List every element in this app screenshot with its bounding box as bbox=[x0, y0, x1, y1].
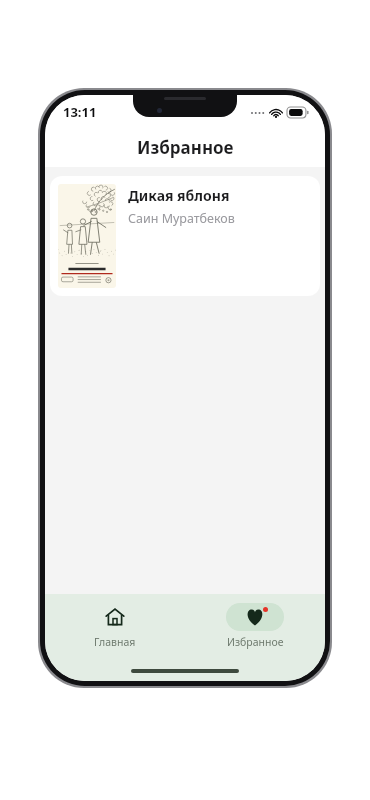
staticText: Избранное bbox=[137, 136, 234, 159]
staticText: Дикая яблоня bbox=[128, 186, 230, 205]
button[interactable]: Главная bbox=[45, 601, 185, 651]
staticText: Саин Муратбеков bbox=[128, 210, 235, 227]
staticText: Главная bbox=[94, 635, 136, 649]
button[interactable]: Дикая яблоня bbox=[50, 176, 320, 296]
button[interactable]: Избранное bbox=[185, 601, 325, 651]
staticText: 13:11 bbox=[63, 103, 97, 121]
staticText: Избранное bbox=[227, 635, 284, 649]
